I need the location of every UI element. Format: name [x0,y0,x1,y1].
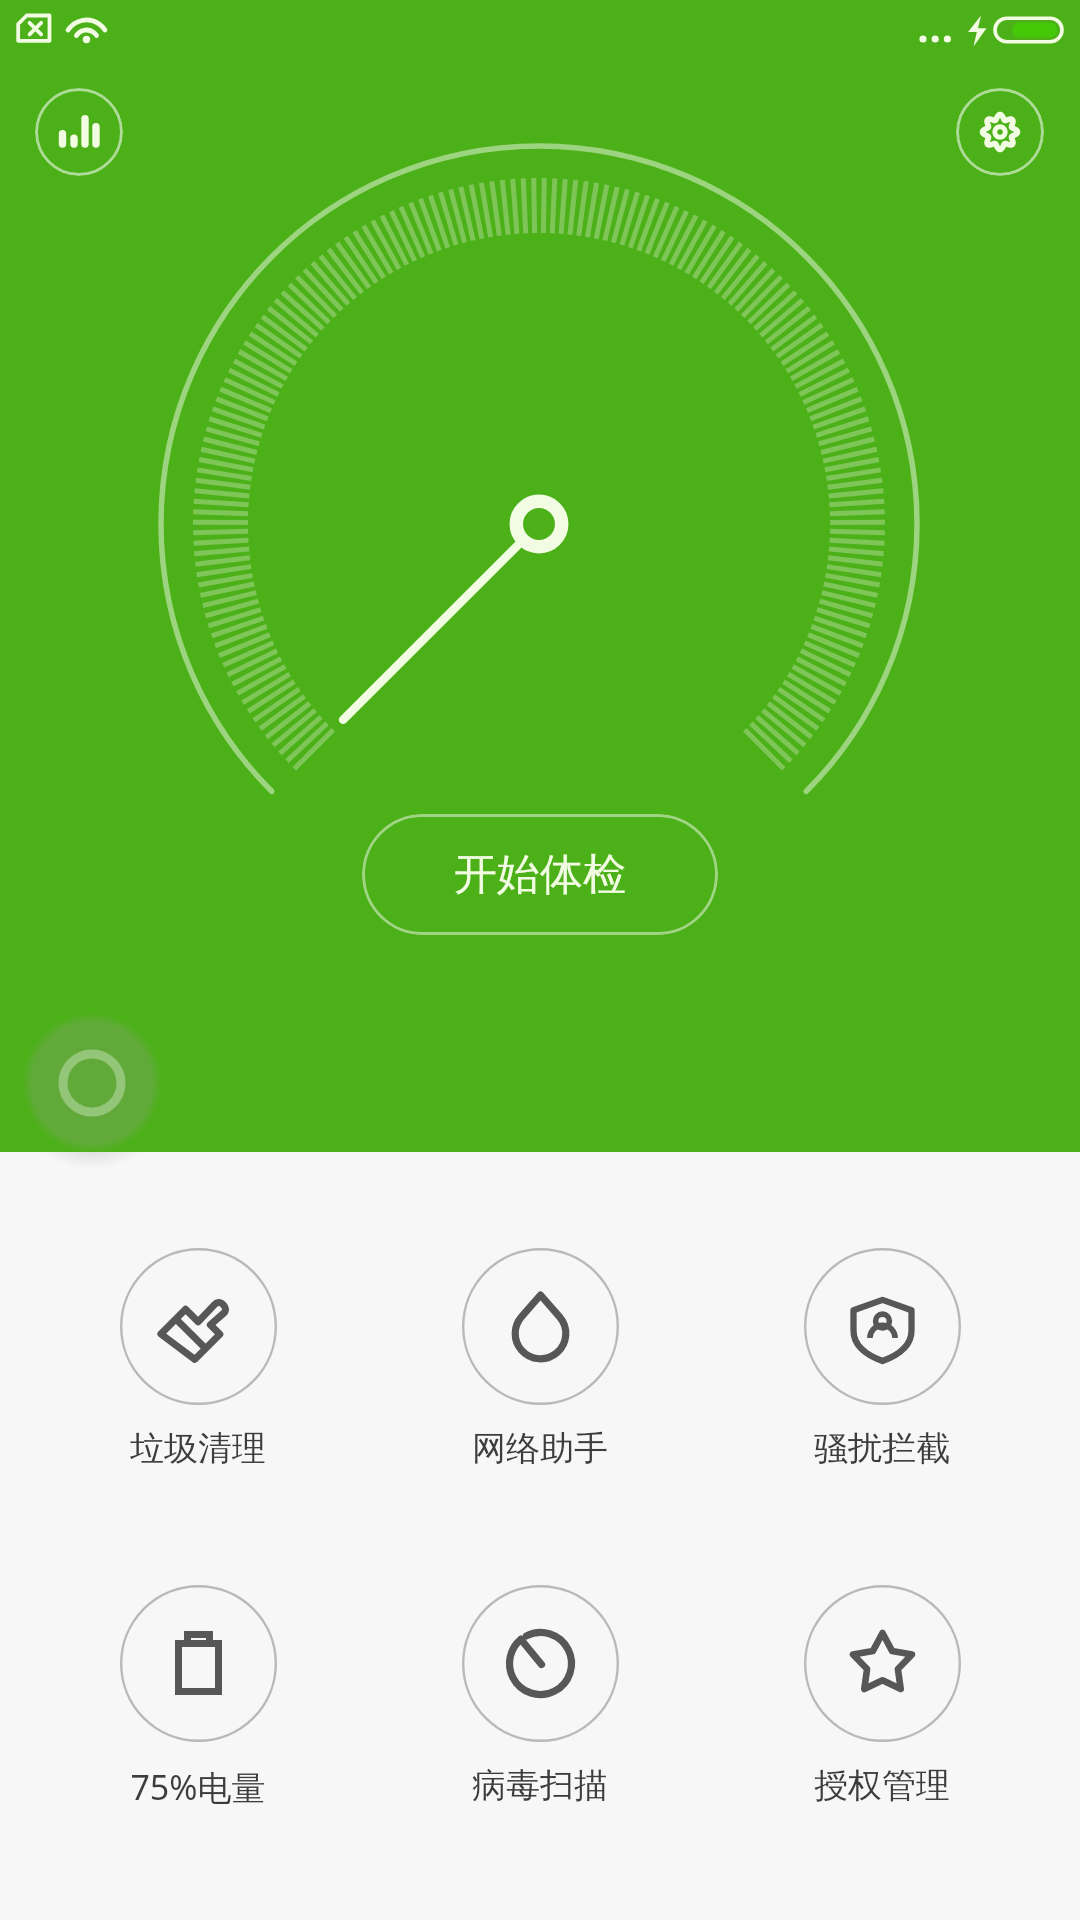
button[interactable]: Settings [956,88,1044,176]
button[interactable]: Junk cleanup [53,1248,343,1448]
button[interactable]: Network assistant [395,1248,685,1448]
staticText: 75%电量 [130,1764,266,1810]
button[interactable]: Permissions [737,1585,1027,1785]
staticText: 垃圾清理 [130,1427,266,1470]
button[interactable]: Battery [53,1585,343,1788]
button[interactable]: Statistics [35,88,123,176]
button[interactable]: 开始体检 [362,814,718,935]
staticText: 网络助手 [472,1427,608,1470]
staticText: 开始体检 [454,848,626,902]
button[interactable]: Virus scan [395,1585,685,1785]
button[interactable]: Block harassment [737,1248,1027,1448]
staticText: 授权管理 [814,1764,950,1807]
staticText: 病毒扫描 [472,1764,608,1807]
staticText: 骚扰拦截 [814,1427,950,1470]
